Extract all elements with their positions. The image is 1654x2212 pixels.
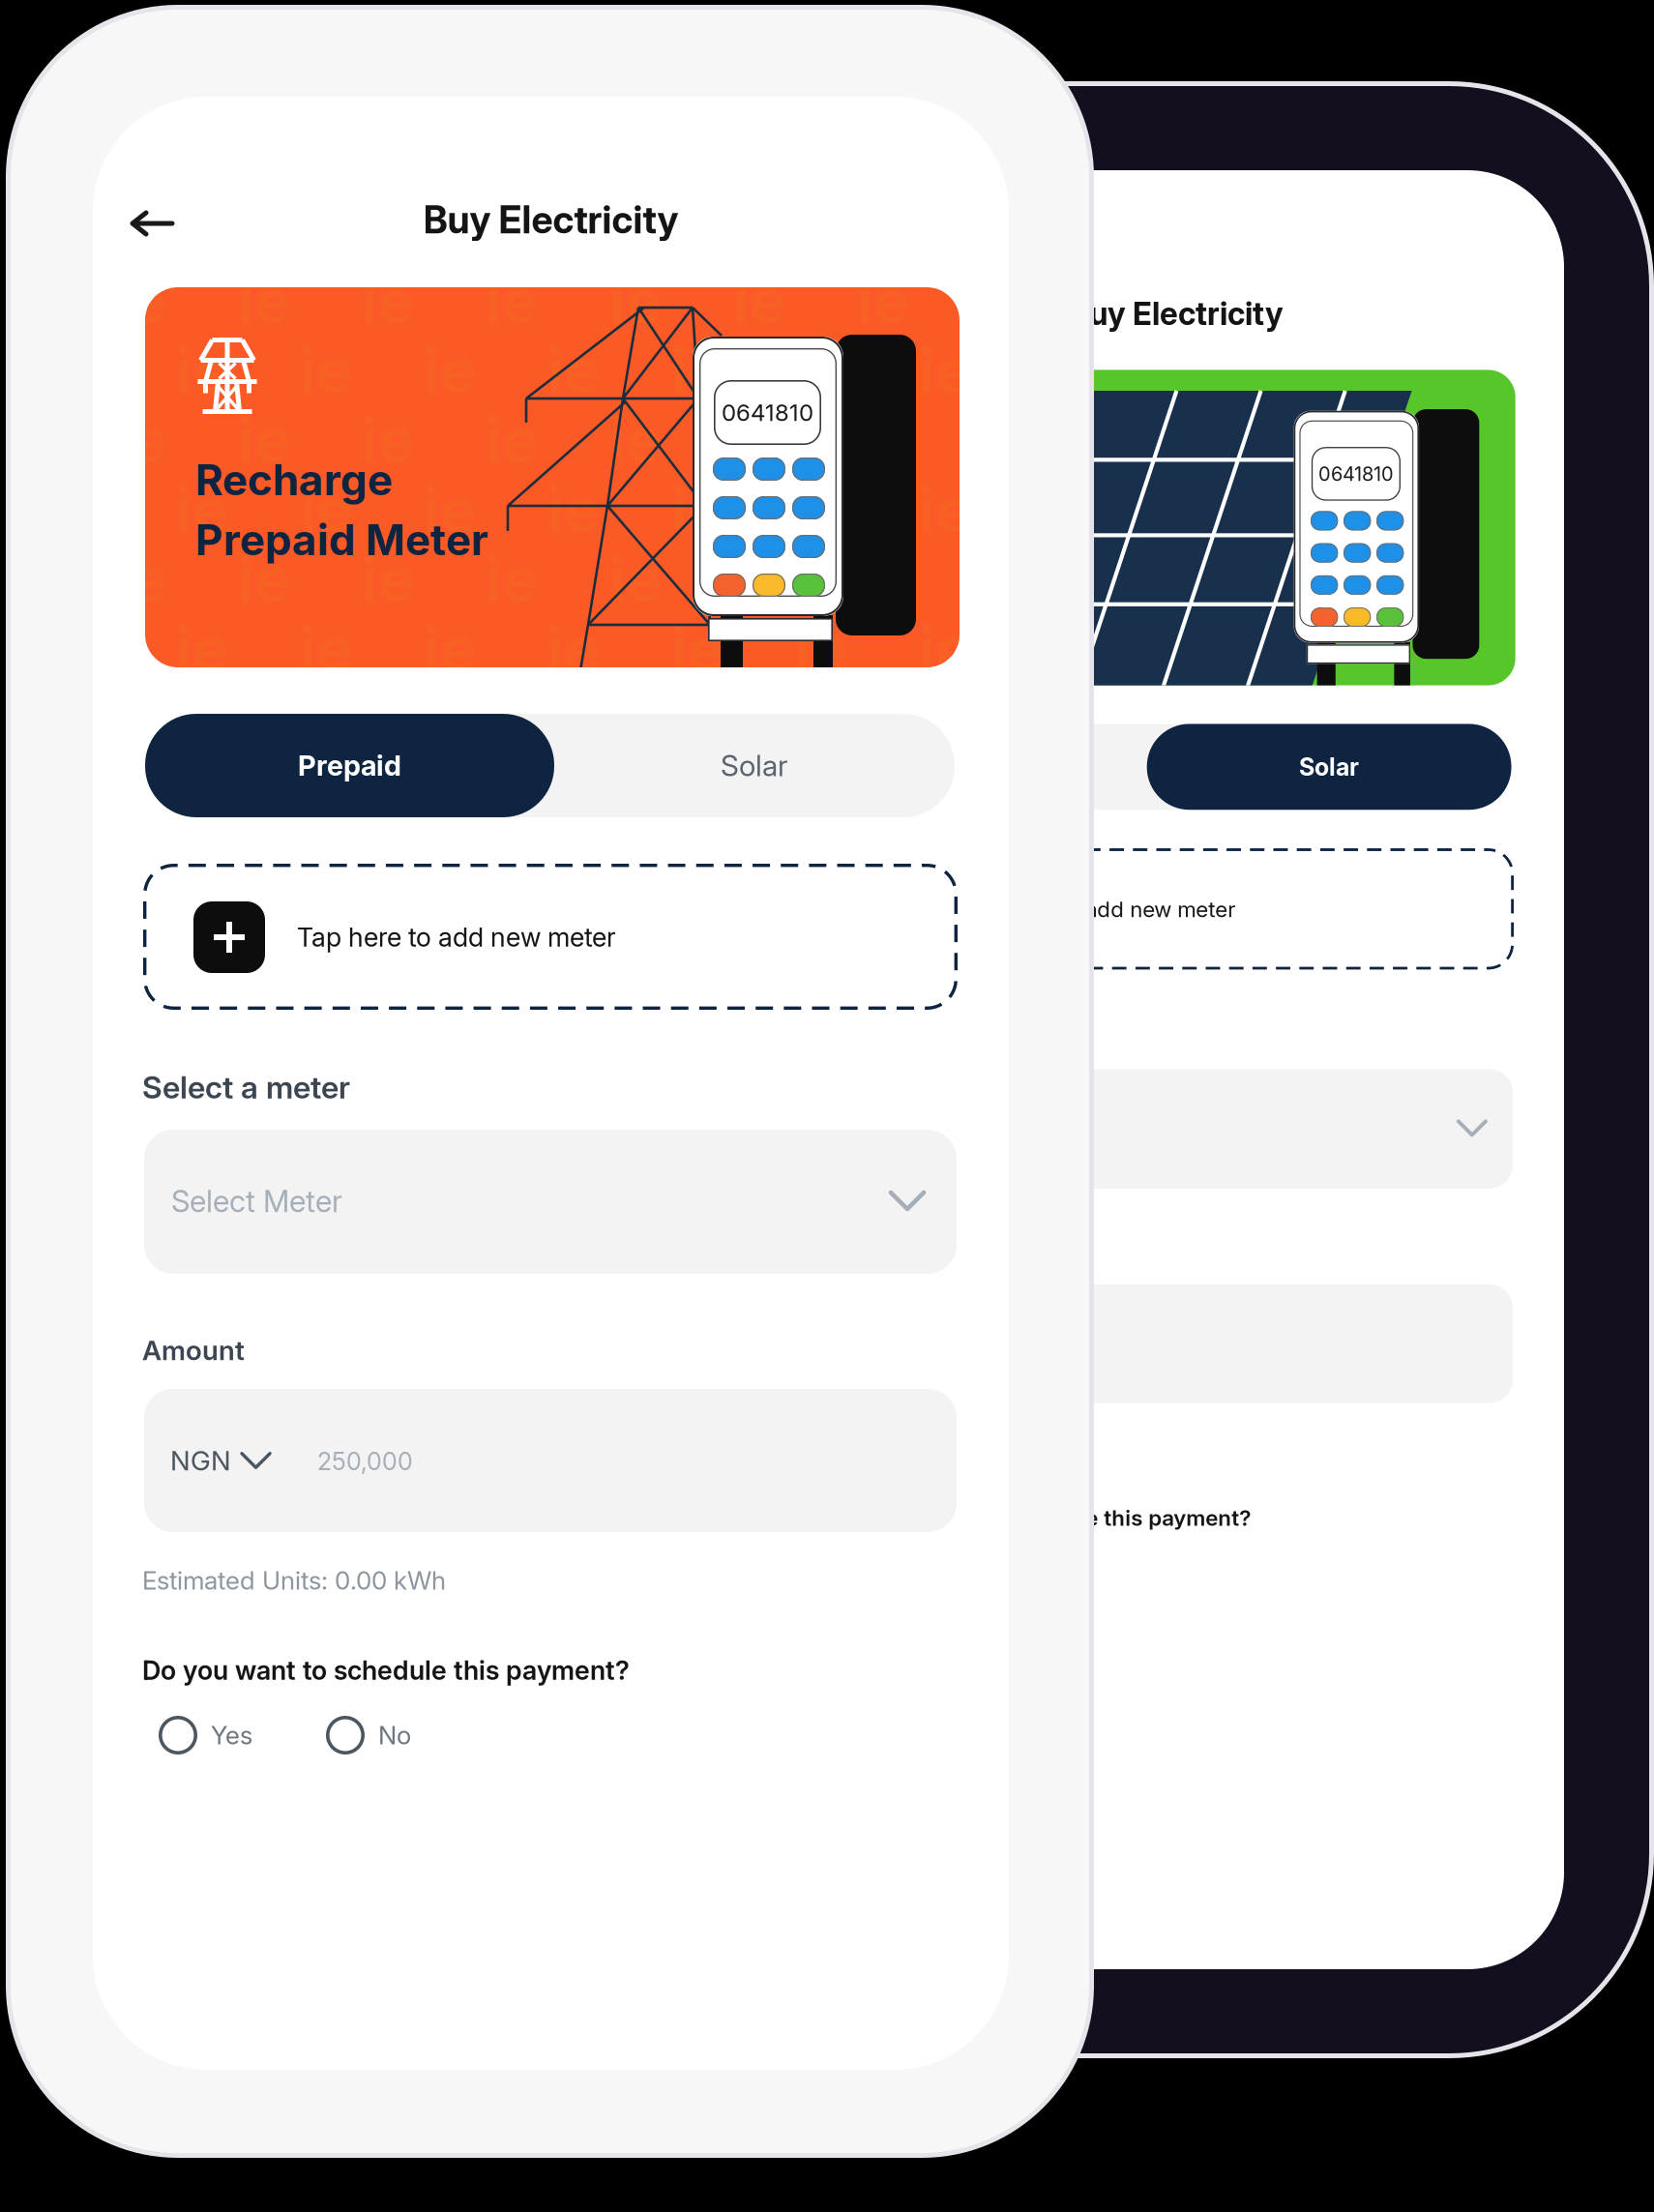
staticText: Prepaid Meter bbox=[195, 514, 488, 565]
staticText: ie bbox=[671, 613, 724, 685]
staticText: ie bbox=[795, 613, 847, 685]
staticText: Recharge bbox=[195, 454, 393, 505]
staticText: Yes bbox=[211, 1720, 252, 1750]
staticText: Solar bbox=[1299, 752, 1359, 781]
button[interactable]: Solar bbox=[1147, 724, 1511, 810]
staticText: Tap here to add new meter bbox=[297, 921, 616, 953]
staticText: ie bbox=[795, 334, 847, 407]
staticText: Solar bbox=[721, 748, 788, 783]
staticText: ie bbox=[486, 265, 538, 337]
staticText: ie bbox=[609, 265, 662, 337]
staticText: NGN bbox=[170, 1444, 231, 1477]
staticText: Amount bbox=[142, 1334, 245, 1367]
staticText: ie bbox=[733, 543, 785, 616]
staticText: ie bbox=[857, 265, 909, 337]
button[interactable]: No bbox=[990, 1556, 1061, 1588]
staticText: ie bbox=[176, 334, 228, 407]
staticText: ie bbox=[362, 543, 414, 616]
staticText: Select Meter bbox=[171, 1183, 342, 1219]
staticText: 250,000 bbox=[317, 1447, 413, 1476]
staticText: 250,000 bbox=[982, 1332, 1062, 1357]
staticText: ie bbox=[176, 613, 228, 685]
staticText: ie bbox=[176, 473, 228, 546]
staticText: 0641810 bbox=[1318, 462, 1394, 485]
button[interactable]: Select Meter bbox=[839, 1069, 1513, 1189]
staticText: ie bbox=[238, 404, 290, 476]
staticText: Buy Electricity bbox=[423, 197, 679, 242]
staticText: ie bbox=[733, 404, 785, 476]
button[interactable]: NGN bbox=[860, 1330, 1069, 1357]
staticText: ie bbox=[424, 473, 476, 546]
button[interactable]: Yes bbox=[159, 1716, 252, 1755]
staticText: ie bbox=[547, 334, 600, 407]
button[interactable]: Tap here to add new meter bbox=[838, 848, 1514, 970]
staticText: ie bbox=[114, 265, 166, 337]
staticText: ie bbox=[114, 543, 166, 616]
staticText: ie bbox=[300, 613, 352, 685]
staticText: Estimated Units: 0.00 kWh bbox=[142, 1565, 446, 1596]
staticText: ie bbox=[424, 613, 476, 685]
staticText: Do you want to schedule this payment? bbox=[837, 1505, 1251, 1531]
staticText: ie bbox=[486, 404, 538, 476]
staticText: ie bbox=[671, 334, 724, 407]
button[interactable]: Select Meter bbox=[144, 1130, 957, 1274]
staticText: Prepaid bbox=[298, 749, 401, 783]
button[interactable]: Solar bbox=[721, 748, 788, 783]
staticText: Estimated Units: 0.00 kWh bbox=[837, 1431, 1095, 1456]
staticText: ie bbox=[238, 265, 290, 337]
staticText: ie bbox=[609, 543, 662, 616]
staticText: ie bbox=[300, 473, 352, 546]
staticText: Tap here to add new meter bbox=[965, 896, 1235, 922]
staticText: Select a meter bbox=[142, 1068, 350, 1106]
staticText: ie bbox=[919, 473, 971, 546]
staticText: Buy Electricity bbox=[1069, 295, 1284, 333]
staticText: Do you want to schedule this payment? bbox=[142, 1655, 630, 1686]
button[interactable]: NGN bbox=[170, 1444, 422, 1477]
staticText: 0641810 bbox=[722, 398, 813, 427]
button[interactable]: Prepaid bbox=[145, 714, 554, 817]
staticText: ie bbox=[362, 404, 414, 476]
staticText: ie bbox=[671, 473, 724, 546]
button[interactable]: Back bbox=[124, 201, 186, 240]
staticText: ie bbox=[362, 265, 414, 337]
staticText: No bbox=[378, 1720, 411, 1750]
staticText: ie bbox=[919, 334, 971, 407]
staticText: ie bbox=[114, 404, 166, 476]
button[interactable]: No bbox=[326, 1716, 411, 1755]
staticText: ie bbox=[238, 543, 290, 616]
button[interactable]: Prepaid bbox=[955, 753, 1037, 781]
staticText: ie bbox=[733, 265, 785, 337]
staticText: ie bbox=[795, 473, 847, 546]
staticText: ie bbox=[919, 613, 971, 685]
staticText: Prepaid bbox=[955, 753, 1037, 781]
staticText: ie bbox=[547, 613, 600, 685]
button[interactable]: Tap here to add new meter bbox=[143, 864, 958, 1010]
staticText: Select Meter bbox=[861, 1113, 1007, 1144]
staticText: ie bbox=[609, 404, 662, 476]
staticText: ie bbox=[547, 473, 600, 546]
